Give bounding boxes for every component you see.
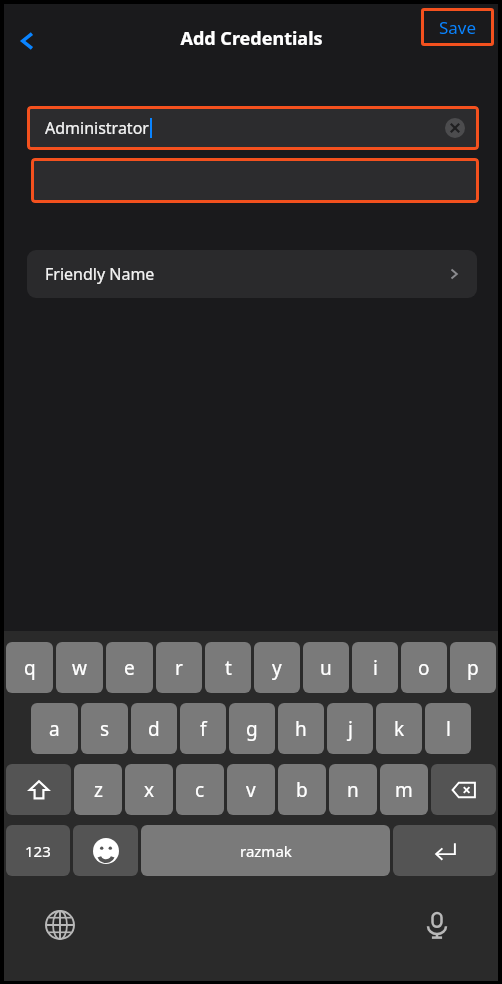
staticText: r <box>175 655 183 681</box>
button[interactable]: Password field <box>31 158 479 203</box>
button[interactable]: g <box>229 703 275 754</box>
staticText: q <box>24 655 36 681</box>
button[interactable]: f <box>180 703 226 754</box>
button[interactable]: Save <box>421 8 494 46</box>
button[interactable]: v <box>227 764 275 815</box>
staticText: Save <box>439 16 477 39</box>
button[interactable]: Enter <box>393 825 496 876</box>
button[interactable]: Administrator <box>27 106 479 150</box>
staticText: g <box>246 716 258 742</box>
staticText: k <box>394 716 405 742</box>
button[interactable]: l <box>425 703 471 754</box>
staticText: j <box>348 716 353 742</box>
staticText: m <box>395 777 413 803</box>
staticText: x <box>144 777 155 803</box>
staticText: b <box>296 777 308 803</box>
button[interactable]: r <box>156 642 202 693</box>
staticText: u <box>320 655 332 681</box>
staticText: l <box>446 716 451 742</box>
button[interactable]: q <box>6 642 53 693</box>
button[interactable]: s <box>81 703 128 754</box>
staticText: f <box>200 716 207 742</box>
button[interactable]: e <box>106 642 153 693</box>
button[interactable]: y <box>254 642 300 693</box>
button[interactable]: n <box>329 764 377 815</box>
button[interactable]: o <box>401 642 447 693</box>
staticText: n <box>347 777 359 803</box>
staticText: s <box>100 716 110 742</box>
staticText: y <box>272 655 282 681</box>
button[interactable]: Change language <box>38 903 82 947</box>
button[interactable]: Clear text <box>443 116 467 140</box>
button[interactable]: Voice input <box>415 903 459 947</box>
button[interactable]: Back <box>6 19 50 63</box>
button[interactable]: u <box>303 642 349 693</box>
button[interactable]: razmak <box>141 825 390 876</box>
staticText: p <box>467 655 479 681</box>
staticText: d <box>148 716 160 742</box>
button[interactable]: Friendly Name <box>27 250 477 298</box>
button[interactable]: x <box>125 764 173 815</box>
staticText: w <box>72 655 87 681</box>
button[interactable]: i <box>352 642 398 693</box>
button[interactable]: m <box>380 764 428 815</box>
button[interactable]: Emoji <box>73 825 138 876</box>
button[interactable]: a <box>31 703 78 754</box>
staticText: i <box>373 655 378 681</box>
button[interactable]: z <box>74 764 122 815</box>
button[interactable]: Shift <box>6 764 71 815</box>
staticText: o <box>418 655 430 681</box>
staticText: c <box>195 777 205 803</box>
button[interactable]: j <box>327 703 373 754</box>
staticText: a <box>49 716 60 742</box>
staticText: h <box>295 716 307 742</box>
staticText: t <box>225 655 232 681</box>
staticText: Friendly Name <box>45 263 155 285</box>
button[interactable]: Backspace <box>431 764 496 815</box>
button[interactable]: k <box>376 703 422 754</box>
button[interactable]: b <box>278 764 326 815</box>
staticText: z <box>94 777 103 803</box>
button[interactable]: w <box>56 642 103 693</box>
staticText: Administrator <box>45 117 149 139</box>
staticText: Add Credentials <box>180 26 323 51</box>
staticText: v <box>246 777 256 803</box>
button[interactable]: c <box>176 764 224 815</box>
staticText: e <box>124 655 135 681</box>
button[interactable]: 123 <box>6 825 70 876</box>
button[interactable]: t <box>205 642 251 693</box>
button[interactable]: d <box>131 703 177 754</box>
button[interactable]: h <box>278 703 324 754</box>
staticText: 123 <box>25 841 51 861</box>
staticText: razmak <box>240 841 292 861</box>
button[interactable]: p <box>450 642 496 693</box>
